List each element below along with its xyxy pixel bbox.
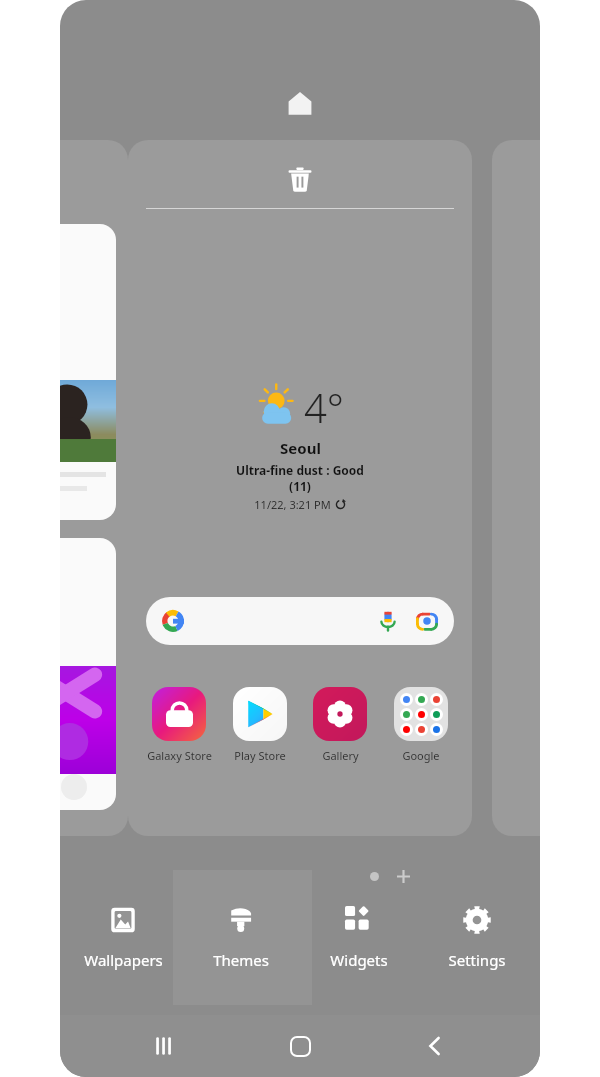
button[interactable]: Play Store bbox=[221, 687, 299, 763]
button[interactable]: Widgets bbox=[304, 870, 414, 1005]
staticText: Settings bbox=[448, 950, 506, 970]
staticText: Ultra-fine dust : Good bbox=[236, 462, 364, 478]
staticText: Themes bbox=[213, 950, 269, 970]
staticText: Galaxy Store bbox=[147, 748, 212, 763]
staticText: Widgets bbox=[330, 950, 388, 970]
button[interactable]: Galaxy Store bbox=[140, 687, 218, 763]
button[interactable]: Home bbox=[270, 1016, 330, 1076]
button[interactable]: 4° bbox=[128, 380, 472, 512]
staticText: Google bbox=[402, 748, 440, 763]
button[interactable]: Remove page bbox=[279, 158, 321, 200]
staticText: 4° bbox=[304, 380, 344, 434]
staticText: 11/22, 3:21 PM bbox=[254, 497, 331, 512]
button[interactable]: Add page bbox=[393, 866, 413, 886]
button[interactable]: Themes bbox=[186, 870, 296, 1005]
button[interactable]: Wallpapers bbox=[68, 870, 178, 1005]
button[interactable]: Recents bbox=[135, 1016, 195, 1076]
button[interactable]: Gallery bbox=[301, 687, 379, 763]
button[interactable]: Google bbox=[382, 687, 460, 763]
staticText: (11) bbox=[289, 478, 311, 494]
button[interactable]: Back bbox=[405, 1016, 465, 1076]
button[interactable] bbox=[146, 597, 454, 645]
button[interactable]: Settings bbox=[422, 870, 532, 1005]
staticText: Gallery bbox=[322, 748, 359, 763]
staticText: Wallpapers bbox=[84, 950, 163, 970]
button[interactable]: Home page bbox=[284, 88, 316, 120]
button[interactable] bbox=[60, 140, 128, 836]
staticText: Seoul bbox=[280, 438, 321, 458]
staticText: Play Store bbox=[234, 748, 286, 763]
